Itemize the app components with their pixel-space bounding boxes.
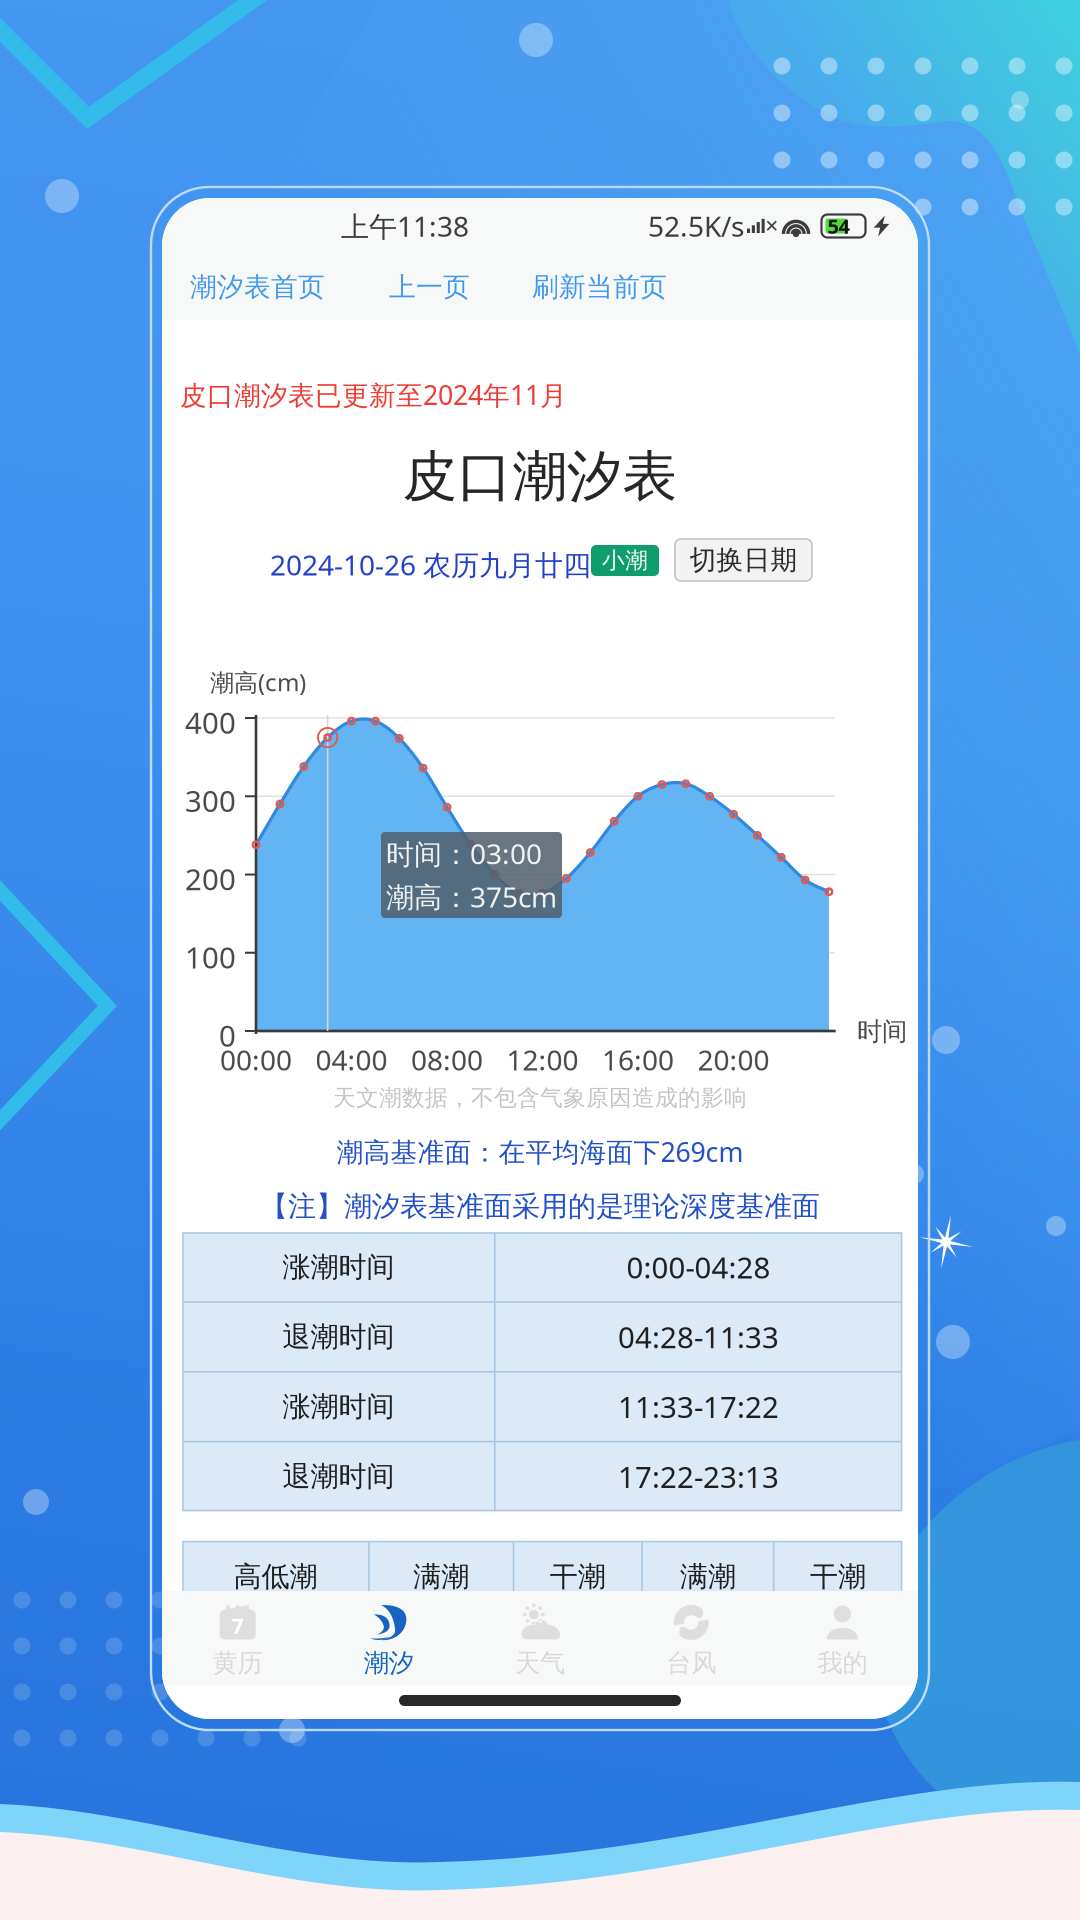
staticText: 切换日期 bbox=[689, 544, 797, 576]
staticText: 潮汐 bbox=[364, 1647, 414, 1678]
staticText: 12:00 bbox=[506, 1041, 578, 1078]
staticText: 涨潮时间 bbox=[282, 1250, 394, 1284]
button[interactable]: 7 bbox=[162, 1591, 313, 1686]
staticText: 04:28-11:33 bbox=[618, 1317, 779, 1356]
button[interactable]: 我的 bbox=[767, 1591, 918, 1686]
button[interactable]: 潮汐表首页 bbox=[174, 258, 341, 316]
staticText: 52.5K/s bbox=[648, 207, 744, 245]
staticText: 潮高：375cm bbox=[386, 878, 557, 915]
staticText: 干潮 bbox=[550, 1559, 606, 1594]
staticText: 小潮 bbox=[602, 547, 648, 574]
staticText: 16:00 bbox=[602, 1041, 674, 1078]
staticText: 11:33-17:22 bbox=[618, 1387, 779, 1426]
button[interactable]: 刷新当前页 bbox=[516, 258, 683, 316]
button[interactable]: 天气 bbox=[464, 1591, 616, 1686]
staticText: 100 bbox=[185, 938, 236, 977]
staticText: 台风 bbox=[666, 1647, 716, 1678]
button[interactable]: 上一页 bbox=[373, 258, 486, 316]
staticText: 潮汐表首页 bbox=[190, 271, 325, 303]
button[interactable]: 切换日期 bbox=[675, 539, 812, 581]
staticText: 00:00 bbox=[220, 1041, 292, 1078]
staticText: 黄历 bbox=[213, 1647, 263, 1678]
staticText: 08:00 bbox=[411, 1041, 483, 1078]
staticText: 天文潮数据，不包含气象原因造成的影响 bbox=[333, 1084, 747, 1112]
staticText: 【注】潮汐表基准面采用的是理论深度基准面 bbox=[260, 1189, 820, 1224]
staticText: 退潮时间 bbox=[282, 1320, 394, 1354]
staticText: 涨潮时间 bbox=[282, 1389, 394, 1424]
staticText: ✕ bbox=[764, 216, 779, 236]
staticText: 2024-10-26 农历九月廿四 bbox=[270, 546, 591, 583]
staticText: 04:00 bbox=[315, 1041, 387, 1078]
staticText: 刷新当前页 bbox=[532, 271, 667, 303]
staticText: 上一页 bbox=[389, 271, 470, 303]
staticText: 时间：03:00 bbox=[386, 835, 542, 872]
staticText: 皮口潮汐表 bbox=[402, 443, 677, 510]
button[interactable]: 台风 bbox=[616, 1591, 767, 1686]
staticText: 0:00-04:28 bbox=[627, 1248, 771, 1287]
staticText: 17:22-23:13 bbox=[618, 1457, 779, 1496]
staticText: 400 bbox=[185, 703, 236, 742]
staticText: 满潮 bbox=[413, 1559, 469, 1594]
staticText: 天气 bbox=[515, 1647, 565, 1678]
staticText: 20:00 bbox=[697, 1041, 769, 1078]
staticText: 300 bbox=[185, 781, 236, 820]
staticText: 我的 bbox=[817, 1647, 867, 1678]
staticText: 200 bbox=[185, 859, 236, 898]
button[interactable]: 潮汐 bbox=[313, 1591, 464, 1686]
staticText: 0 bbox=[219, 1016, 236, 1055]
staticText: 上午11:38 bbox=[341, 207, 469, 245]
staticText: 皮口潮汐表已更新至2024年11月 bbox=[180, 377, 567, 412]
staticText: 退潮时间 bbox=[282, 1459, 394, 1494]
staticText: 满潮 bbox=[680, 1559, 736, 1594]
staticText: 潮高基准面：在平均海面下269cm bbox=[336, 1134, 743, 1169]
staticText: 高低潮 bbox=[234, 1559, 318, 1594]
staticText: 时间 bbox=[857, 1016, 907, 1047]
staticText: 54 bbox=[827, 213, 849, 239]
staticText: 干潮 bbox=[810, 1559, 866, 1594]
staticText: 7 bbox=[232, 1611, 244, 1640]
staticText: 潮高(cm) bbox=[210, 666, 306, 698]
